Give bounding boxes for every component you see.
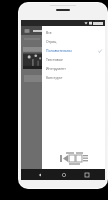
button[interactable]: Все bbox=[42, 28, 105, 37]
button[interactable]: Отриц bbox=[42, 37, 105, 46]
button[interactable]: Конструкт bbox=[42, 73, 105, 82]
staticText: Текстовые bbox=[46, 57, 63, 62]
button[interactable]: Home bbox=[59, 170, 68, 179]
staticText: Все bbox=[46, 30, 52, 35]
button[interactable]: Open navigation drawer bbox=[24, 28, 30, 34]
staticText: Инструмент bbox=[46, 66, 66, 71]
button[interactable]: Текстовые bbox=[42, 55, 105, 64]
staticText: Конструкт bbox=[46, 75, 63, 80]
button[interactable]: Инструмент bbox=[42, 64, 105, 73]
button[interactable] bbox=[23, 47, 45, 69]
staticText: Отриц bbox=[46, 39, 57, 44]
staticText: Положительные bbox=[46, 48, 72, 53]
button[interactable]: Back bbox=[35, 170, 44, 179]
button[interactable]: Recent apps bbox=[82, 170, 91, 179]
button[interactable]: Положительные bbox=[42, 46, 105, 55]
